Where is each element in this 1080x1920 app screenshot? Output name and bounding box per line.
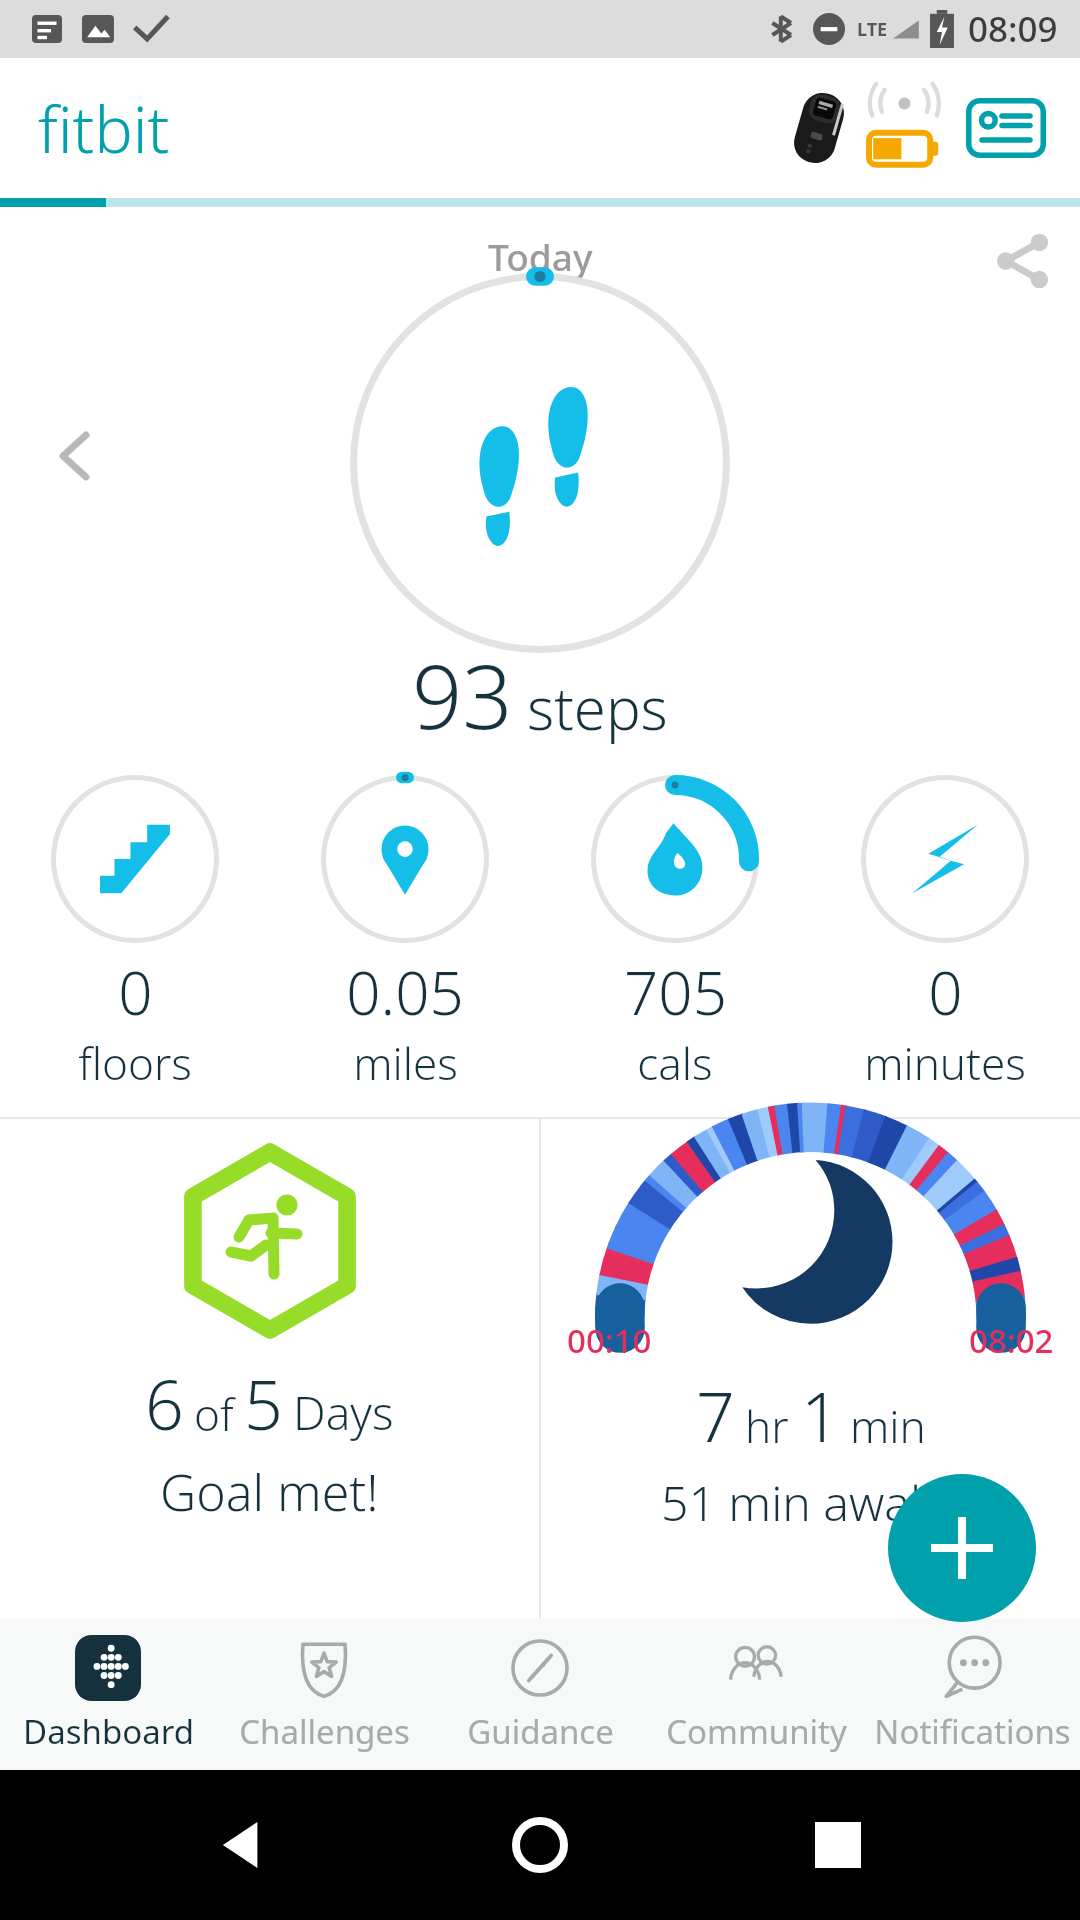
staticText: fitbit	[38, 85, 170, 172]
staticText: 0	[928, 951, 963, 1033]
staticText: Challenges	[239, 1709, 410, 1754]
button[interactable]: 705	[540, 775, 810, 1093]
staticText: 5	[244, 1357, 283, 1450]
staticText: Community	[666, 1709, 847, 1754]
button[interactable]: 0	[0, 775, 270, 1093]
staticText: floors	[78, 1033, 192, 1093]
button[interactable]: Dashboard	[0, 1618, 216, 1770]
button[interactable]: Home	[485, 1790, 595, 1900]
staticText: 08:09	[968, 5, 1058, 53]
button[interactable]: Add	[888, 1474, 1036, 1622]
button[interactable]: 0	[810, 775, 1080, 1093]
staticText: 705	[624, 951, 727, 1033]
button[interactable]: Tracker	[778, 87, 860, 169]
staticText: 08:02	[969, 1318, 1054, 1363]
staticText: 0	[118, 951, 153, 1033]
button[interactable]	[350, 273, 730, 653]
staticText: minutes	[864, 1033, 1026, 1093]
button[interactable]: Previous day	[30, 410, 122, 502]
button[interactable]: fitbit	[38, 85, 170, 172]
button[interactable]: 6	[0, 1119, 539, 1618]
button[interactable]: Today	[488, 231, 593, 281]
staticText: Goal met!	[160, 1458, 379, 1526]
button[interactable]: Notifications	[864, 1618, 1080, 1770]
staticText: hr	[745, 1396, 789, 1456]
staticText: 6	[145, 1357, 184, 1450]
button[interactable]: 00:10	[541, 1119, 1080, 1618]
button[interactable]: Community	[648, 1618, 864, 1770]
button[interactable]: Recent apps	[783, 1790, 893, 1900]
staticText: 51 min awake	[661, 1470, 961, 1535]
staticText: 00:10	[567, 1318, 652, 1363]
staticText: Dashboard	[23, 1709, 194, 1754]
staticText: steps	[527, 668, 668, 747]
button[interactable]: Share	[980, 219, 1064, 303]
button[interactable]: Challenges	[216, 1618, 432, 1770]
staticText: miles	[353, 1033, 458, 1093]
staticText: LTE	[857, 17, 888, 42]
staticText: cals	[637, 1033, 713, 1093]
staticText: 0.05	[346, 951, 464, 1033]
staticText: of	[194, 1384, 234, 1444]
staticText: 1	[801, 1369, 840, 1462]
staticText: Guidance	[467, 1709, 614, 1754]
staticText: min	[850, 1396, 926, 1456]
button[interactable]: Account	[960, 82, 1052, 174]
button[interactable]: Guidance	[432, 1618, 648, 1770]
button[interactable]: Battery	[866, 81, 946, 175]
staticText: Days	[293, 1381, 394, 1444]
staticText: 7	[696, 1369, 735, 1462]
staticText: Notifications	[874, 1709, 1071, 1754]
staticText: Today	[488, 231, 593, 281]
staticText: 93	[412, 635, 513, 755]
button[interactable]: 0.05	[270, 775, 540, 1093]
button[interactable]: Back	[188, 1790, 298, 1900]
